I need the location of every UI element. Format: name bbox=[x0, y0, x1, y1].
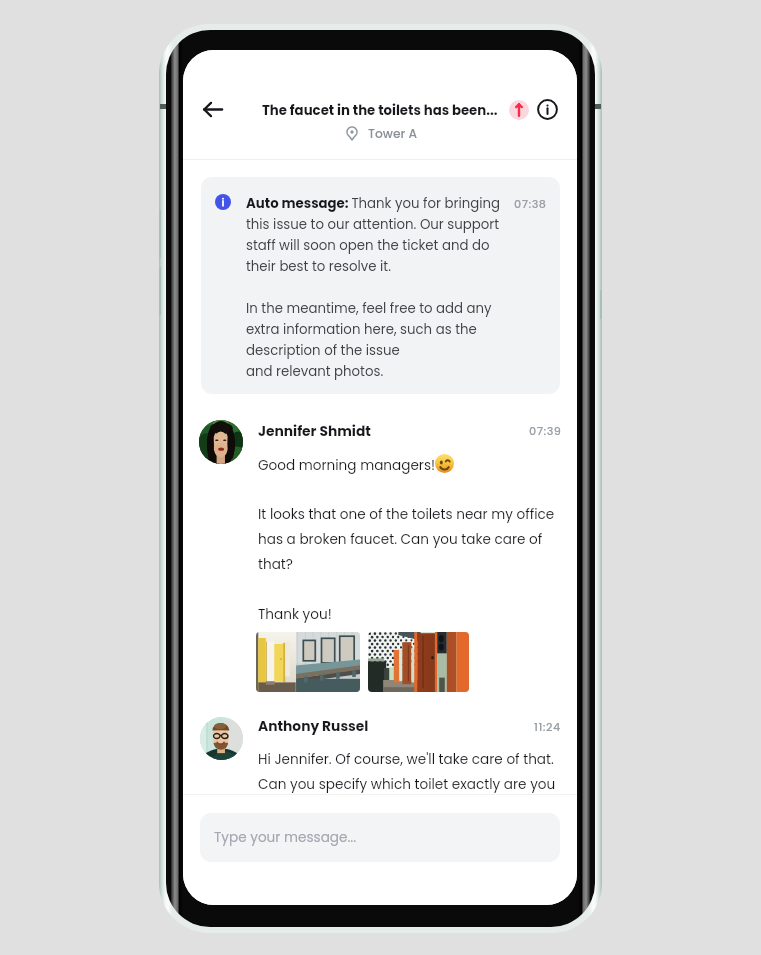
button[interactable]: Type your message... bbox=[200, 813, 560, 862]
button[interactable]: Auto message: Thank you for bringing thi… bbox=[201, 177, 560, 394]
staticText: Hi Jennifer. Of course, we'll take care … bbox=[258, 746, 560, 794]
staticText: Type your message... bbox=[214, 828, 356, 847]
staticText: Tower A bbox=[368, 126, 418, 142]
staticText: 11:24 bbox=[534, 719, 561, 735]
button[interactable]: Photo of the toilets bbox=[256, 632, 360, 692]
staticText: Jennifer Shmidt bbox=[258, 421, 371, 441]
staticText: 07:38 bbox=[514, 196, 547, 212]
staticText: Thank you! bbox=[258, 601, 332, 625]
button[interactable]: Ticket info bbox=[535, 97, 560, 122]
staticText: Good morning managers! bbox=[258, 452, 436, 476]
staticText: It looks that one of the toilets near my… bbox=[258, 501, 558, 576]
staticText: 07:39 bbox=[529, 423, 562, 439]
staticText: Anthony Russel bbox=[258, 716, 369, 736]
button[interactable]: High priority bbox=[506, 97, 531, 122]
staticText: The faucet in the toilets has been... bbox=[262, 98, 498, 121]
staticText: Auto message: Thank you for bringing thi… bbox=[246, 192, 508, 381]
button[interactable]: Back bbox=[193, 89, 233, 129]
button[interactable]: Photo of the restroom stalls bbox=[368, 632, 469, 692]
